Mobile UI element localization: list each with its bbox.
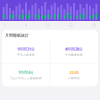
- staticText: 15: [46, 24, 50, 27]
- staticText: 29: [92, 24, 96, 27]
- staticText: 22: [69, 24, 73, 27]
- staticText: 入眠時刻: [68, 77, 80, 80]
- staticText: 8: [25, 24, 27, 27]
- staticText: 22:50: [70, 70, 79, 75]
- staticText: 1時間4分: [18, 70, 34, 75]
- staticText: 平均睡眠時間: [65, 53, 83, 56]
- staticText: 月間睡眠統計: [5, 33, 29, 38]
- staticText: 1: [4, 24, 6, 27]
- staticText: 1時間31分: [17, 46, 35, 52]
- staticText: 1日の平均しん睡眠時間: [10, 76, 42, 80]
- staticText: 平均入眠潜時: [17, 53, 35, 56]
- staticText: 4時間28分: [65, 46, 83, 52]
